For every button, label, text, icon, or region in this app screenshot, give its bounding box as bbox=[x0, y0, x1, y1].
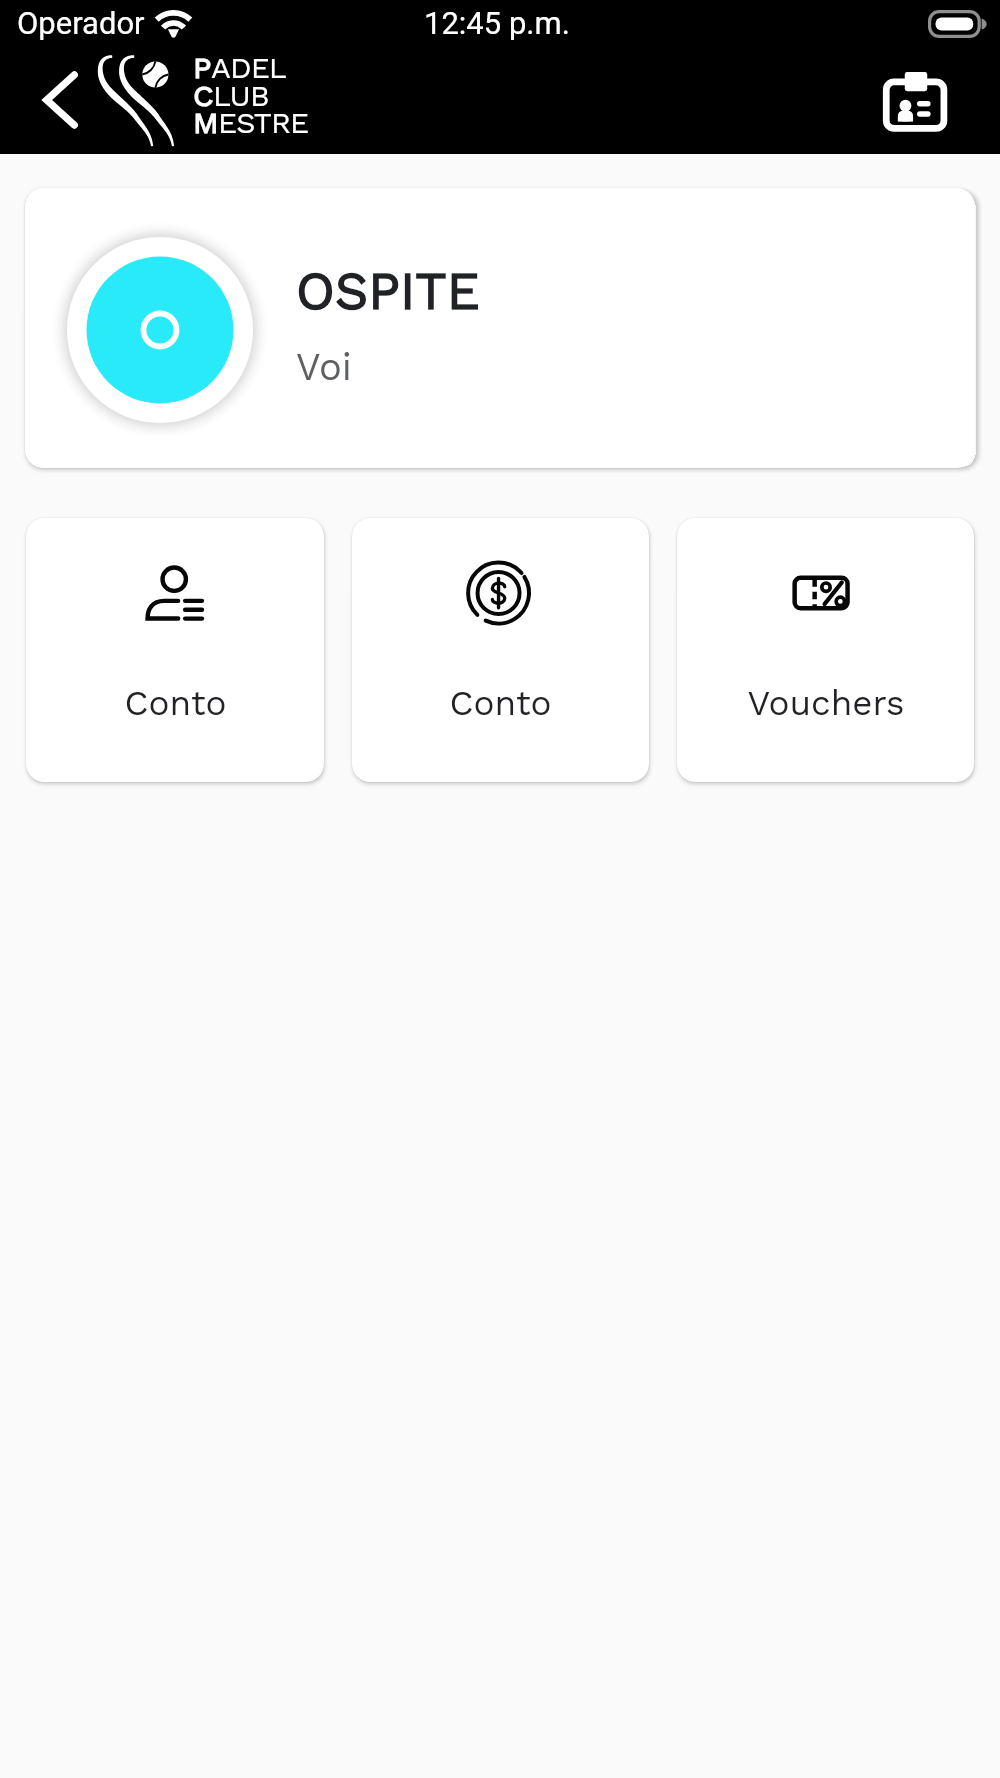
staticText: P bbox=[193, 50, 211, 85]
staticText: ADEL bbox=[211, 50, 286, 85]
staticText: C bbox=[193, 78, 213, 113]
button[interactable]: Vouchers bbox=[677, 518, 974, 782]
staticText: Conto bbox=[124, 682, 227, 723]
staticText: Operador bbox=[17, 5, 145, 41]
staticText: M bbox=[193, 105, 218, 140]
button[interactable]: Back bbox=[27, 62, 94, 138]
staticText: 12:45 p.m. bbox=[424, 5, 570, 41]
staticText: LUB bbox=[213, 78, 269, 113]
staticText: Conto bbox=[449, 682, 552, 723]
staticText: OSPITE bbox=[296, 261, 480, 322]
button[interactable]: Conto bbox=[26, 518, 324, 782]
staticText: Voi bbox=[296, 345, 352, 390]
staticText: Vouchers bbox=[747, 682, 905, 723]
button[interactable]: OSPITE bbox=[25, 188, 975, 468]
button[interactable]: Membership card bbox=[877, 65, 955, 143]
button[interactable]: Conto bbox=[352, 518, 649, 782]
staticText: ESTRE bbox=[218, 105, 309, 140]
